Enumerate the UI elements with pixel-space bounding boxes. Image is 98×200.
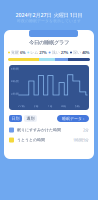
staticText: 6時 — [75, 104, 80, 108]
staticText: レム — [30, 50, 38, 55]
staticText: 深い — [73, 50, 81, 55]
staticText: 週別 — [26, 116, 34, 121]
staticText: 22時 — [18, 104, 25, 108]
staticText: 4時間 — [11, 79, 19, 83]
staticText: 睡眠データ › — [62, 116, 84, 121]
staticText: 2分 — [83, 127, 89, 133]
button[interactable]: 週別 — [24, 115, 37, 122]
staticText: 浅い — [52, 50, 60, 55]
staticText: 27% — [61, 50, 69, 55]
staticText: 0時 — [34, 104, 39, 108]
staticText: 4時 — [61, 104, 66, 108]
button[interactable]: うとうとの時間 — [4, 135, 94, 145]
staticText: 40% — [82, 50, 90, 55]
staticText: 覚醒 — [11, 50, 19, 55]
staticText: 8時間 — [11, 67, 19, 70]
staticText: 1時間9分 — [73, 137, 89, 143]
button[interactable]: 睡眠データ › — [57, 115, 89, 122]
button[interactable]: 日別 — [9, 115, 22, 122]
staticText: 日別 — [11, 116, 19, 121]
staticText: 0時間 — [11, 92, 19, 96]
staticText: 昨夜の睡眠データを表示しています — [17, 18, 81, 23]
staticText: うとうとの時間 — [17, 137, 45, 142]
staticText: 眠りにすすみかけた時間 — [17, 127, 61, 132]
staticText: 今日の睡眠グラフ — [29, 39, 69, 46]
staticText: 2024年2月27日 火曜日 1日目 — [15, 11, 82, 19]
button[interactable]: 眠りにすすみかけた時間 — [4, 125, 94, 135]
staticText: 6% — [20, 50, 26, 55]
staticText: 2時 — [47, 104, 52, 108]
staticText: 27% — [39, 50, 47, 55]
